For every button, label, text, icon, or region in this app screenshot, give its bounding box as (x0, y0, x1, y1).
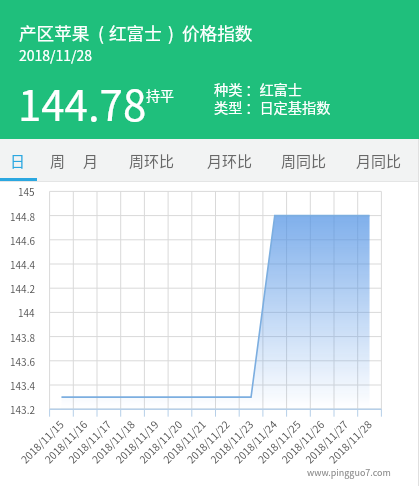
staticText: 类型 ：日定基指数 (214, 97, 331, 118)
staticText: 周 (50, 150, 66, 172)
staticText: 月 (83, 150, 99, 172)
staticText: 价格指数 (182, 20, 253, 45)
staticText: 种类 ：红富士 (214, 79, 302, 100)
button[interactable]: 日 (0, 139, 37, 181)
staticText: 周环比 (129, 150, 175, 172)
staticText: 日 (10, 150, 26, 172)
button[interactable]: 月环比 (190, 139, 266, 181)
button[interactable]: 月同比 (340, 139, 419, 181)
staticText: 144.78 (18, 72, 147, 133)
staticText: 月环比 (207, 150, 253, 172)
staticText: ( (98, 20, 104, 45)
button[interactable]: 周 (37, 139, 72, 181)
staticText: 产区苹果 (19, 20, 90, 45)
staticText: 月同比 (356, 150, 402, 172)
staticText: 2018/11/28 (19, 45, 93, 65)
button[interactable]: 周环比 (120, 139, 190, 181)
staticText: www.pingguo7.com (307, 466, 391, 479)
staticText: 周同比 (281, 150, 327, 172)
button[interactable]: 周同比 (266, 139, 341, 181)
staticText: 持平 (146, 85, 174, 105)
staticText: ) (168, 20, 174, 45)
button[interactable]: 月 (73, 139, 120, 181)
staticText: 红富士 (109, 20, 162, 45)
